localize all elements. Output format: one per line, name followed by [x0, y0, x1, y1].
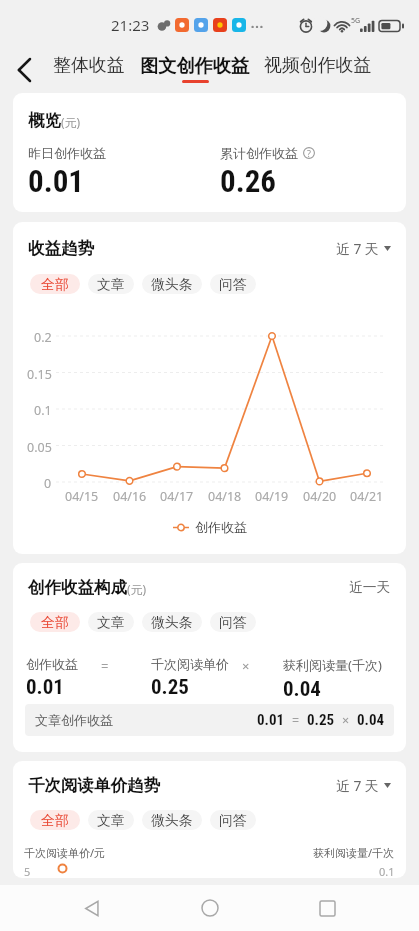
staticText: 千次阅读单价/元 — [24, 845, 106, 860]
button[interactable]: More info — [303, 147, 315, 159]
staticText: 全部 — [41, 614, 69, 631]
staticText: 近一天 — [349, 579, 391, 596]
staticText: 累计创作收益 — [220, 145, 298, 161]
staticText: × — [342, 712, 350, 729]
staticText: 文章 — [97, 276, 125, 293]
staticText: 概览 — [28, 110, 61, 131]
button[interactable]: 文章创作收益 — [25, 704, 394, 736]
staticText: 0.1 — [34, 402, 52, 419]
staticText: 昨日创作收益 — [28, 145, 106, 161]
staticText: (元) — [127, 581, 147, 597]
staticText: 微头条 — [151, 276, 193, 293]
button[interactable]: 近 7 天 — [336, 776, 391, 795]
button[interactable]: 文章 — [88, 274, 134, 294]
button[interactable]: 微头条 — [142, 274, 202, 294]
staticText: 04/18 — [208, 488, 242, 505]
staticText: 视频创作收益 — [264, 54, 372, 77]
button[interactable]: 全部 — [30, 810, 80, 830]
button[interactable]: 问答 — [210, 274, 256, 294]
staticText: 图文创作收益 — [140, 54, 250, 77]
staticText: 04/16 — [113, 488, 147, 505]
button[interactable]: 图文创作收益 — [138, 51, 252, 86]
staticText: 创作收益 — [195, 519, 247, 535]
staticText: 0.05 — [27, 439, 52, 456]
staticText: 微头条 — [151, 812, 193, 829]
staticText: 0.2 — [34, 329, 52, 346]
staticText: 问答 — [219, 276, 247, 293]
staticText: 0.26 — [220, 163, 277, 199]
staticText: 近 7 天 — [336, 239, 379, 258]
staticText: ? — [307, 147, 311, 159]
staticText: 04/15 — [65, 488, 99, 505]
staticText: 0.15 — [27, 366, 52, 383]
staticText: 5G — [351, 16, 361, 26]
staticText: 0 — [44, 475, 52, 492]
staticText: 全部 — [41, 812, 69, 829]
staticText: 全部 — [41, 276, 69, 293]
staticText: 0.01 — [26, 675, 64, 700]
staticText: 千次阅读单价 — [151, 656, 229, 672]
staticText: 5 — [24, 864, 31, 878]
staticText: 创作收益 — [26, 656, 78, 672]
staticText: 0.01 — [257, 711, 285, 729]
staticText: 04/17 — [160, 488, 194, 505]
staticText: 近 7 天 — [336, 776, 379, 795]
button[interactable]: 整体收益 — [51, 51, 127, 86]
staticText: (元) — [61, 114, 81, 130]
staticText: = — [292, 712, 300, 729]
button[interactable]: 全部 — [30, 274, 80, 294]
staticText: 千次阅读单价趋势 — [28, 775, 160, 796]
staticText: 04/20 — [303, 488, 337, 505]
staticText: 获利阅读量/千次 — [313, 845, 395, 860]
staticText: 0.25 — [151, 675, 189, 700]
button[interactable]: 问答 — [210, 810, 256, 830]
button[interactable]: 微头条 — [142, 810, 202, 830]
staticText: 21:23 — [111, 15, 150, 35]
staticText: 微头条 — [151, 614, 193, 631]
button[interactable]: Back — [66, 885, 118, 931]
staticText: 文章创作收益 — [35, 712, 113, 728]
staticText: 04/19 — [255, 488, 289, 505]
staticText: 0.04 — [283, 677, 321, 702]
staticText: 问答 — [219, 614, 247, 631]
staticText: 整体收益 — [53, 54, 125, 77]
staticText: 创作收益构成 — [28, 577, 127, 598]
staticText: 0.25 — [307, 711, 335, 729]
button[interactable]: 文章 — [88, 810, 134, 830]
button[interactable]: 近一天 — [349, 579, 391, 596]
staticText: 0.04 — [357, 711, 385, 729]
staticText: 文章 — [97, 812, 125, 829]
staticText: × — [242, 657, 250, 675]
staticText: 问答 — [219, 812, 247, 829]
staticText: 0.01 — [28, 163, 85, 199]
staticText: 收益趋势 — [28, 238, 94, 259]
staticText: = — [101, 657, 109, 675]
button[interactable]: Recent apps — [301, 885, 353, 931]
staticText: 04/21 — [350, 488, 384, 505]
button[interactable]: 近 7 天 — [336, 239, 391, 258]
button[interactable]: Home — [184, 885, 236, 931]
button[interactable]: 微头条 — [142, 612, 202, 632]
staticText: 文章 — [97, 614, 125, 631]
button[interactable]: Back — [4, 50, 44, 90]
staticText: 0.1 — [379, 864, 395, 878]
button[interactable]: 视频创作收益 — [262, 51, 374, 86]
button[interactable]: 问答 — [210, 612, 256, 632]
staticText: 获利阅读量(千次) — [283, 656, 382, 674]
button[interactable]: 全部 — [30, 612, 80, 632]
button[interactable]: 文章 — [88, 612, 134, 632]
